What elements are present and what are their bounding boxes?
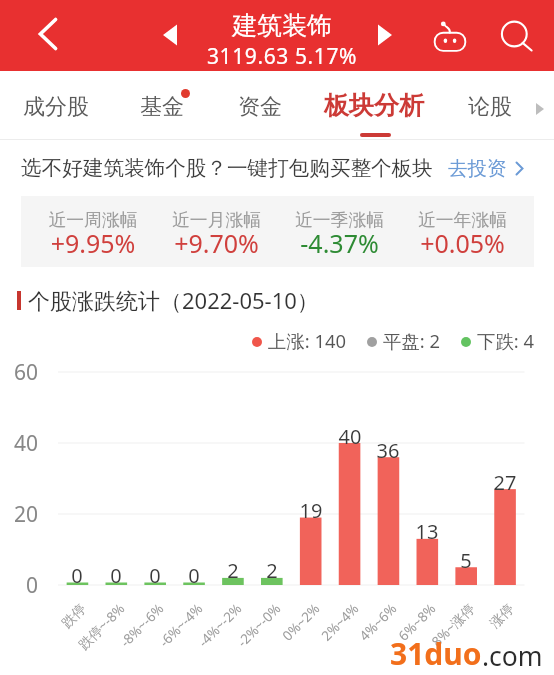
staticText: 近一年涨幅 [401, 209, 524, 231]
button[interactable]: Previous sector [150, 15, 190, 55]
staticText: 36 [368, 437, 408, 464]
button[interactable]: 论股 [456, 86, 524, 128]
staticText: 40 [330, 423, 370, 450]
button[interactable]: 成分股 [11, 86, 101, 128]
staticText: 近一月涨幅 [155, 209, 278, 231]
staticText: 板块分析 [324, 90, 424, 121]
staticText: 8%~涨停 [381, 600, 478, 675]
button[interactable]: Search [491, 12, 539, 60]
staticText: 跌停~-8% [31, 600, 128, 675]
button[interactable]: Next sector [365, 15, 405, 55]
staticText: 13 [407, 518, 447, 545]
staticText: 0 [96, 562, 136, 589]
button[interactable]: AI assistant [426, 13, 474, 61]
button[interactable]: 基金 [128, 86, 196, 128]
staticText: -4%~-2% [148, 600, 245, 675]
staticText: 下跌: 4 [477, 328, 535, 353]
staticText: 个股涨跌统计（2022-05-10） [28, 285, 319, 315]
staticText: 跌停 [0, 600, 89, 675]
staticText: -2%~-0% [187, 600, 284, 675]
staticText: 6%~8% [342, 600, 439, 675]
staticText: 基金 [140, 93, 184, 121]
staticText: +0.05% [401, 226, 524, 260]
staticText: 近一季涨幅 [278, 209, 401, 231]
staticText: 3119.63 5.17% [207, 42, 358, 71]
button[interactable]: Back [24, 10, 72, 58]
staticText: 0%~2% [226, 600, 323, 675]
staticText: 论股 [468, 93, 512, 121]
staticText: 27 [485, 469, 525, 496]
staticText: 0 [0, 571, 38, 600]
staticText: 19 [291, 497, 331, 524]
staticText: 60 [0, 358, 38, 387]
staticText: 建筑装饰 [232, 10, 332, 41]
staticText: -6%~-4% [109, 600, 206, 675]
staticText: 0 [174, 562, 214, 589]
staticText: -8%~-6% [70, 600, 167, 675]
staticText: 去投资 [448, 156, 507, 181]
staticText: 5 [446, 547, 486, 574]
staticText: 4%~6% [303, 600, 400, 675]
staticText: 2 [252, 557, 292, 584]
button[interactable]: 板块分析 [312, 83, 436, 128]
staticText: 0 [57, 562, 97, 589]
staticText: +9.70% [155, 226, 278, 260]
staticText: -4.37% [278, 226, 401, 260]
button[interactable]: 选不好建筑装饰个股？一键打包购买整个板块 [0, 140, 554, 196]
staticText: 31duo [390, 633, 482, 674]
staticText: 20 [0, 500, 38, 529]
staticText: 成分股 [23, 93, 89, 121]
staticText: 2%~4% [265, 600, 362, 675]
staticText: 选不好建筑装饰个股？一键打包购买整个板块 [21, 155, 433, 181]
staticText: 0 [135, 562, 175, 589]
staticText: 涨停 [420, 600, 517, 675]
staticText: +9.95% [31, 226, 155, 260]
staticText: 上涨: 140 [268, 328, 347, 353]
staticText: 平盘: 2 [383, 328, 441, 353]
staticText: 40 [0, 429, 38, 458]
button[interactable]: 资金 [226, 86, 294, 128]
staticText: 2 [213, 557, 253, 584]
staticText: 近一周涨幅 [31, 209, 155, 231]
staticText: .com [482, 638, 543, 674]
staticText: 资金 [238, 93, 282, 121]
